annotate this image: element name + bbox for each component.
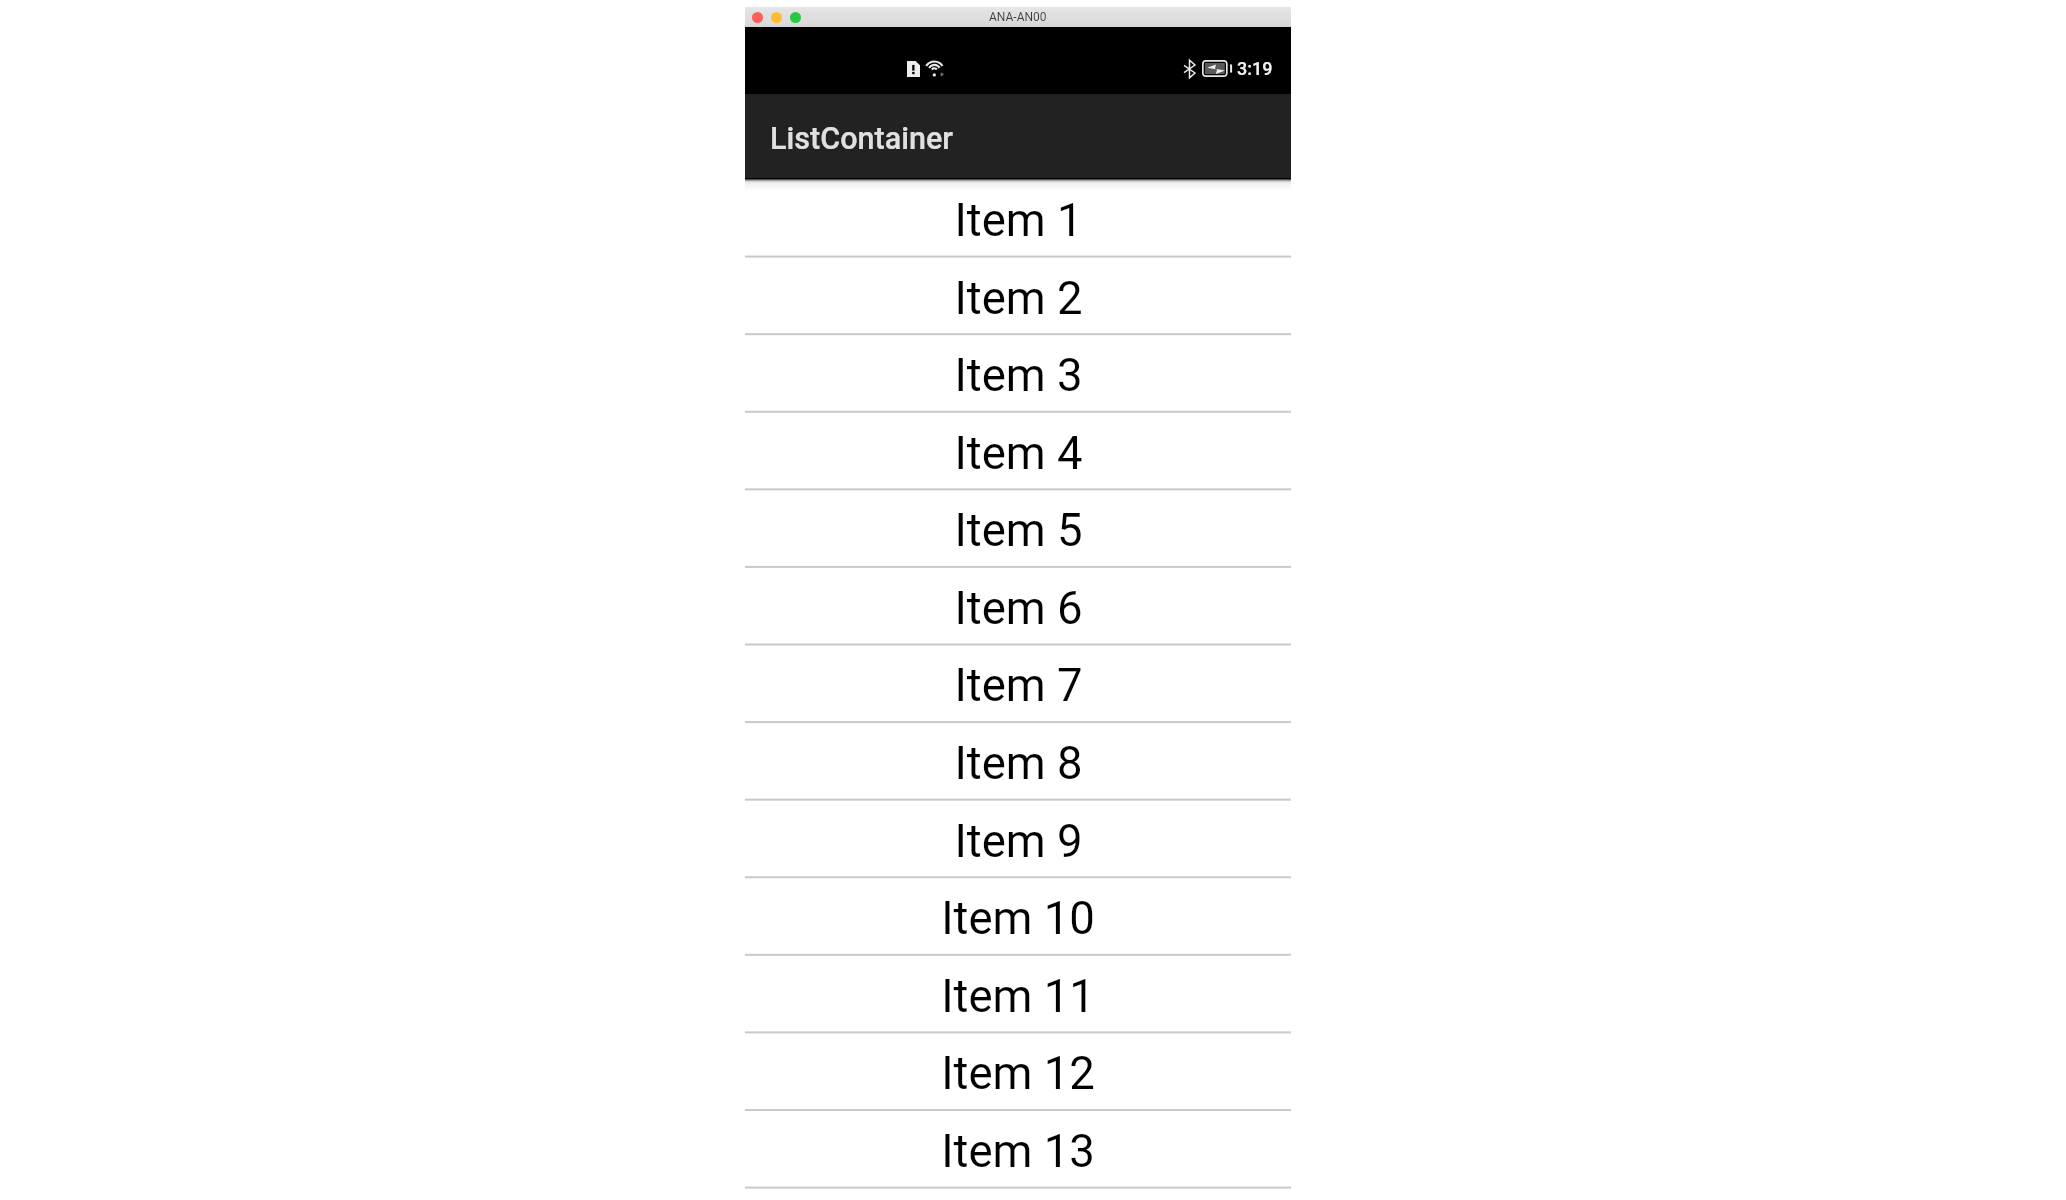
staticText: Item 1 (954, 194, 1083, 247)
button[interactable]: Item 2 (745, 257, 1291, 335)
button[interactable]: Item 13 (745, 1110, 1291, 1188)
staticText: 3:19 (1237, 58, 1273, 79)
button[interactable]: Item 6 (745, 567, 1291, 645)
button[interactable]: Item 7 (745, 644, 1291, 722)
button[interactable]: Item 11 (745, 955, 1291, 1033)
staticText: Item 10 (941, 892, 1095, 945)
staticText: ANA-AN00 (989, 10, 1047, 24)
staticText: Item 6 (954, 582, 1083, 635)
staticText: Item 8 (954, 737, 1083, 790)
staticText: Item 12 (941, 1047, 1095, 1100)
button[interactable]: Item 12 (745, 1032, 1291, 1110)
button[interactable]: Item 9 (745, 800, 1291, 878)
button[interactable]: Item 10 (745, 877, 1291, 955)
button[interactable]: Item 3 (745, 334, 1291, 412)
staticText: Item 13 (941, 1125, 1095, 1178)
button[interactable]: Item 4 (745, 412, 1291, 490)
staticText: Item 5 (954, 504, 1083, 557)
button[interactable]: Item 5 (745, 489, 1291, 567)
button[interactable]: Zoom (790, 12, 801, 23)
button[interactable]: Minimise (771, 12, 782, 23)
button[interactable]: Item 14 (745, 1188, 1291, 1200)
staticText: Item 2 (954, 272, 1083, 325)
button[interactable]: Close (752, 12, 763, 23)
staticText: Item 7 (954, 659, 1083, 712)
staticText: Item 9 (954, 815, 1083, 868)
staticText: Item 4 (954, 427, 1083, 480)
staticText: ListContainer (770, 121, 953, 157)
button[interactable]: Item 1 (745, 179, 1291, 257)
staticText: Item 3 (954, 349, 1083, 402)
button[interactable]: Item 8 (745, 722, 1291, 800)
staticText: Item 11 (941, 970, 1095, 1023)
